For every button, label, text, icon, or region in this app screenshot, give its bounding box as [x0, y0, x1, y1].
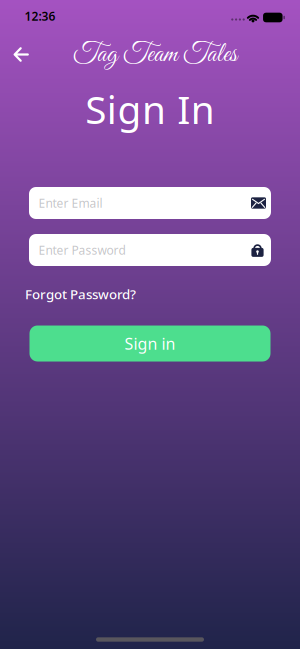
staticText: Forgot Password?: [25, 285, 136, 303]
button[interactable]: Sign in: [29, 325, 270, 361]
staticText: Sign In: [85, 83, 215, 135]
staticText: Enter Password: [38, 242, 125, 258]
staticText: Tag Team Tales: [73, 38, 237, 72]
staticText: Enter Email: [38, 195, 102, 211]
staticText: 12:36: [24, 8, 55, 24]
button[interactable]: Forgot Password?: [25, 285, 136, 303]
staticText: Sign in: [124, 333, 175, 354]
button[interactable]: Enter Email: [29, 187, 271, 219]
button[interactable]: Enter Password: [29, 234, 271, 266]
button[interactable]: [8, 42, 34, 67]
